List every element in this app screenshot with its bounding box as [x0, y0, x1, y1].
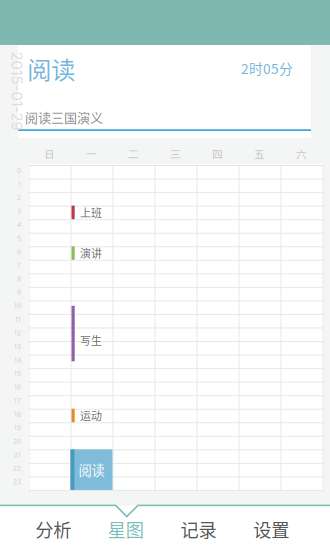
staticText: 记录: [180, 516, 216, 542]
staticText: 8: [17, 275, 21, 283]
staticText: 10: [14, 302, 21, 310]
staticText: 三: [170, 146, 181, 161]
staticText: 9: [17, 288, 21, 296]
staticText: 演讲: [80, 245, 102, 261]
staticText: 3: [17, 207, 21, 215]
staticText: 14: [14, 356, 21, 364]
staticText: 四: [212, 146, 223, 161]
staticText: 2: [17, 194, 21, 202]
staticText: 11: [15, 316, 21, 323]
staticText: 18: [14, 410, 21, 418]
staticText: 22: [13, 464, 21, 472]
staticText: 星图: [108, 516, 144, 542]
staticText: 阅读三国演义: [25, 107, 103, 126]
staticText: 一: [86, 146, 97, 161]
staticText: 21: [14, 451, 21, 459]
staticText: 日: [44, 146, 55, 161]
staticText: 运动: [80, 408, 102, 423]
button[interactable]: 设置: [235, 508, 307, 550]
staticText: 4: [17, 221, 21, 229]
button[interactable]: 记录: [162, 508, 234, 550]
staticText: 2015-01-29: [0, 82, 56, 100]
button[interactable]: 分析: [17, 508, 89, 550]
staticText: 7: [17, 261, 21, 269]
staticText: 阅读: [78, 460, 104, 479]
staticText: 17: [14, 397, 21, 405]
staticText: 写生: [80, 332, 102, 348]
staticText: 0: [17, 167, 21, 174]
staticText: 12: [14, 329, 21, 337]
staticText: 2时05分: [241, 58, 293, 78]
staticText: 13: [14, 343, 21, 350]
staticText: 19: [14, 424, 21, 432]
staticText: 15: [14, 370, 21, 378]
staticText: 上班: [80, 204, 102, 220]
staticText: 六: [296, 146, 307, 161]
staticText: 20: [13, 437, 21, 445]
staticText: 分析: [35, 516, 71, 542]
staticText: 16: [14, 383, 21, 391]
staticText: 阅读: [27, 51, 75, 86]
staticText: 5: [17, 234, 21, 242]
staticText: 6: [17, 248, 21, 256]
staticText: 23: [13, 478, 21, 486]
staticText: 设置: [253, 516, 289, 542]
staticText: 五: [254, 146, 265, 161]
staticText: 二: [128, 146, 139, 161]
staticText: 1: [18, 180, 21, 188]
button[interactable]: 星图: [90, 508, 162, 550]
